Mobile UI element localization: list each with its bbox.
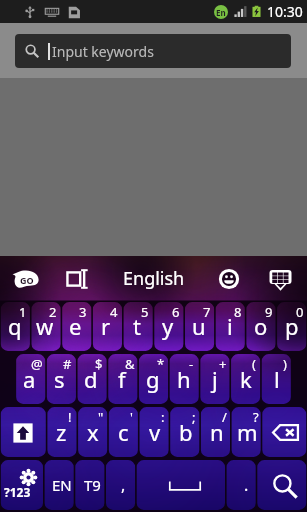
button[interactable]: Symbols and settings xyxy=(1,461,45,510)
button[interactable]: z xyxy=(47,408,76,457)
staticText: i xyxy=(227,311,233,341)
button[interactable]: i xyxy=(215,303,244,351)
staticText: & xyxy=(125,355,135,373)
staticText: x xyxy=(87,417,99,447)
staticText: ! xyxy=(68,408,72,426)
staticText: " xyxy=(98,408,104,426)
staticText: - xyxy=(189,355,194,373)
staticText: ; xyxy=(192,408,196,426)
button[interactable]: e xyxy=(61,303,89,351)
button[interactable]: j xyxy=(200,355,229,404)
button[interactable]: , xyxy=(109,461,138,510)
staticText: q xyxy=(8,311,22,341)
staticText: v xyxy=(149,417,161,447)
staticText: c xyxy=(118,417,129,447)
staticText: z xyxy=(56,417,67,447)
staticText: English xyxy=(123,266,185,291)
staticText: g xyxy=(146,364,160,394)
button[interactable]: a xyxy=(15,355,43,404)
staticText: 5 xyxy=(141,303,149,321)
button[interactable]: b xyxy=(171,408,200,457)
button[interactable]: Search xyxy=(263,461,306,510)
button[interactable]: Hide keyboard xyxy=(263,261,298,296)
staticText: 10:30 xyxy=(267,2,303,21)
staticText: w xyxy=(36,311,54,341)
staticText: p xyxy=(285,311,299,341)
staticText: ) xyxy=(283,355,287,373)
staticText: , xyxy=(121,474,126,496)
staticText: ? xyxy=(253,408,259,426)
staticText: n xyxy=(210,417,224,447)
staticText: s xyxy=(54,364,65,394)
button[interactable]: q xyxy=(1,303,29,351)
button[interactable]: c xyxy=(109,408,138,457)
button[interactable]: T9 xyxy=(78,461,107,510)
staticText: d xyxy=(84,364,98,394)
button[interactable]: k xyxy=(231,355,260,404)
staticText: 0 xyxy=(296,303,304,321)
button[interactable]: m xyxy=(233,408,262,457)
button[interactable]: g xyxy=(138,355,167,404)
staticText: k xyxy=(240,364,252,394)
button[interactable]: l xyxy=(262,355,291,404)
staticText: b xyxy=(179,417,193,447)
staticText: 9 xyxy=(265,303,273,321)
button[interactable]: d xyxy=(76,355,105,404)
staticText: EN xyxy=(52,475,72,495)
staticText: 4 xyxy=(110,303,118,321)
staticText: 1 xyxy=(19,303,27,321)
button[interactable]: w xyxy=(31,303,59,351)
button[interactable]: p xyxy=(277,303,306,351)
button[interactable]: v xyxy=(140,408,169,457)
staticText: . xyxy=(244,474,249,496)
staticText: o xyxy=(254,311,268,341)
button[interactable]: t xyxy=(122,303,151,351)
staticText: GO xyxy=(20,274,34,286)
button[interactable]: n xyxy=(202,408,231,457)
button[interactable]: Keyboard layout xyxy=(60,261,95,296)
button[interactable]: Backspace xyxy=(264,408,306,457)
staticText: Input keywords xyxy=(52,42,154,61)
staticText: / xyxy=(222,408,227,426)
staticText: 3 xyxy=(79,303,87,321)
button[interactable]: h xyxy=(169,355,198,404)
staticText: : xyxy=(161,408,165,426)
staticText: @ xyxy=(31,355,43,373)
button[interactable]: EN xyxy=(47,461,76,510)
staticText: ( xyxy=(252,355,256,373)
staticText: f xyxy=(118,364,126,394)
staticText: En xyxy=(216,7,226,18)
button[interactable]: r xyxy=(91,303,120,351)
staticText: y xyxy=(162,311,174,341)
button[interactable]: Emoji xyxy=(211,261,246,296)
button[interactable]: o xyxy=(246,303,275,351)
staticText: m xyxy=(237,417,258,447)
button[interactable]: English xyxy=(123,266,185,291)
staticText: e xyxy=(69,311,82,341)
staticText: u xyxy=(192,311,206,341)
button[interactable]: Space xyxy=(140,461,230,510)
staticText: 2 xyxy=(49,303,57,321)
staticText: t xyxy=(133,311,141,341)
button[interactable]: u xyxy=(184,303,213,351)
staticText: r xyxy=(101,311,111,341)
button[interactable]: x xyxy=(78,408,107,457)
staticText: 8 xyxy=(234,303,242,321)
button[interactable]: s xyxy=(45,355,74,404)
staticText: a xyxy=(23,364,36,394)
staticText: j xyxy=(212,364,218,394)
staticText: + xyxy=(219,355,227,373)
staticText: # xyxy=(63,355,72,373)
staticText: * xyxy=(157,355,165,373)
button[interactable]: . xyxy=(232,461,261,510)
button[interactable]: y xyxy=(153,303,182,351)
staticText: ?123 xyxy=(4,484,31,500)
button[interactable]: Shift xyxy=(1,408,45,457)
button[interactable]: Input keywords xyxy=(15,34,291,68)
staticText: h xyxy=(177,364,191,394)
staticText: T9 xyxy=(84,475,101,495)
button[interactable]: f xyxy=(107,355,136,404)
staticText: 6 xyxy=(172,303,180,321)
button[interactable]: GO Keyboard xyxy=(8,261,44,297)
staticText: 7 xyxy=(203,303,211,321)
